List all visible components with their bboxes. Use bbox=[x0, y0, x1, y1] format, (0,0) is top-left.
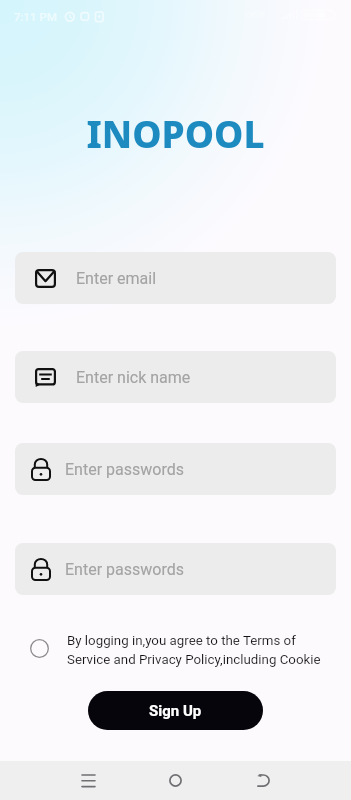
staticText: Enter passwords bbox=[65, 560, 184, 579]
button[interactable]: Enter passwords bbox=[15, 543, 336, 595]
staticText: Enter passwords bbox=[65, 460, 184, 479]
button[interactable]: Home bbox=[153, 761, 198, 800]
button[interactable]: Recent apps bbox=[66, 761, 110, 800]
staticText: INOPOOL bbox=[0, 108, 351, 158]
staticText: 7:11 PM bbox=[14, 10, 57, 23]
button[interactable]: Back bbox=[241, 761, 285, 800]
staticText: Sign Up bbox=[149, 702, 202, 720]
button[interactable]: Agree to terms bbox=[30, 639, 49, 658]
staticText: Enter nick name bbox=[76, 368, 191, 387]
button[interactable]: Enter passwords bbox=[15, 443, 336, 495]
staticText: By logging in,you agree to the Terms of … bbox=[67, 633, 329, 667]
button[interactable]: Enter nick name bbox=[15, 351, 336, 403]
button[interactable]: Enter email bbox=[15, 252, 336, 304]
staticText: Enter email bbox=[76, 269, 157, 288]
button[interactable]: Sign Up bbox=[88, 691, 263, 730]
